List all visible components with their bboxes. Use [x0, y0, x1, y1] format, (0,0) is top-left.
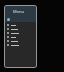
- button[interactable]: [5, 39, 36, 43]
- staticText: Menu: [13, 9, 24, 14]
- button[interactable]: [5, 27, 36, 31]
- button[interactable]: [5, 23, 36, 27]
- other: Profile: [7, 18, 10, 21]
- button[interactable]: [5, 43, 36, 47]
- button[interactable]: [5, 31, 36, 35]
- button[interactable]: [5, 35, 36, 39]
